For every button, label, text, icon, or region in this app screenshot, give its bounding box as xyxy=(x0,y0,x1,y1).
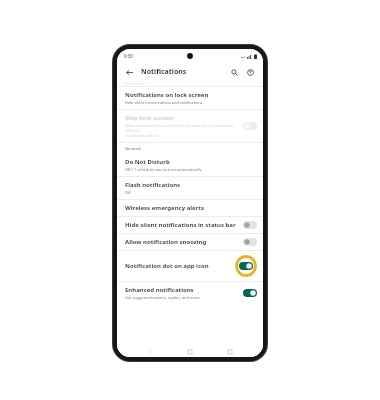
button[interactable]: Allow notification snoozing xyxy=(117,234,263,250)
staticText: Hide silent conversations and notificati… xyxy=(125,100,203,105)
staticText: Notifications xyxy=(141,67,187,77)
staticText: Lock screen xyxy=(125,81,145,86)
staticText: Allow conversations and chats to be seen… xyxy=(125,123,239,138)
button[interactable]: Wireless emergency alerts xyxy=(117,200,263,216)
button[interactable]: Back xyxy=(123,66,136,79)
button[interactable]: Skip lock screen xyxy=(117,110,263,142)
button[interactable]: Toggle xyxy=(239,262,253,270)
staticText: Notifications on lock screen xyxy=(125,91,209,99)
button[interactable]: Enhanced notifications xyxy=(117,282,263,304)
button[interactable]: Toggle xyxy=(243,289,257,297)
staticText: Allow notification snoozing xyxy=(125,238,207,246)
button[interactable]: Do Not Disturb xyxy=(117,154,263,176)
button[interactable]: Notifications on lock screen xyxy=(117,87,263,109)
staticText: Notification dot on app icon xyxy=(125,262,209,270)
staticText: Skip lock screen xyxy=(125,114,173,122)
button[interactable]: Toggle xyxy=(243,221,257,229)
staticText: Wireless emergency alerts xyxy=(125,204,204,212)
staticText: Off xyxy=(125,190,131,195)
button[interactable]: Back xyxy=(143,347,157,357)
staticText: Do Not Disturb xyxy=(125,158,170,166)
staticText: Hide silent notifications in status bar xyxy=(125,221,236,229)
staticText: General xyxy=(125,146,141,152)
staticText: Get suggested actions, replies, and more xyxy=(125,295,200,300)
button[interactable]: Notification dot on app icon xyxy=(117,251,263,281)
button[interactable]: Search xyxy=(228,66,241,79)
staticText: 9:30 xyxy=(124,53,133,59)
button[interactable]: Help xyxy=(244,66,257,79)
staticText: Off / 1 schedule can turn on automatical… xyxy=(125,167,202,172)
button[interactable]: Toggle xyxy=(243,122,257,130)
button[interactable]: Home xyxy=(183,347,197,357)
button[interactable]: Toggle xyxy=(243,238,257,246)
button[interactable]: Flash notifications xyxy=(117,177,263,199)
button[interactable]: Recent apps xyxy=(223,347,237,357)
staticText: Flash notifications xyxy=(125,181,181,189)
staticText: Enhanced notifications xyxy=(125,286,194,294)
button[interactable]: Hide silent notifications in status bar xyxy=(117,217,263,233)
